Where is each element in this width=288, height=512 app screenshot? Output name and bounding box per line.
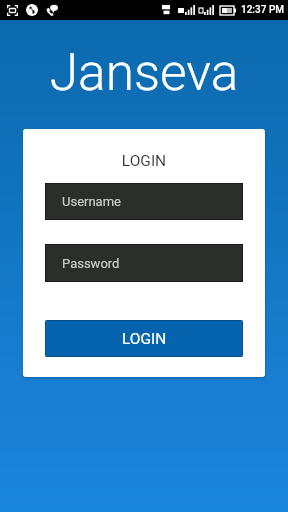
other: Call (26, 4, 38, 16)
button[interactable]: LOGIN (45, 320, 243, 357)
other: Voicemail (46, 4, 58, 16)
staticText: LOGIN (45, 152, 243, 170)
button[interactable]: Username (45, 183, 243, 220)
staticText: LOGIN (122, 330, 167, 348)
staticText: 12:37 PM (241, 4, 285, 16)
staticText: Janseva (0, 42, 288, 102)
staticText: Username (62, 194, 121, 209)
button[interactable]: Password (45, 244, 243, 282)
other: Screenshot (7, 5, 18, 16)
staticText: Password (62, 256, 120, 271)
